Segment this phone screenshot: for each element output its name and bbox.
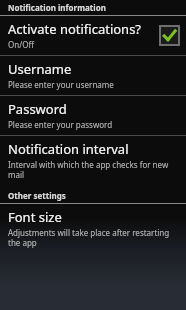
staticText: Please enter your password [8, 119, 113, 130]
button[interactable]: Activate notifications? [0, 16, 186, 55]
staticText: Activate notifications? [8, 20, 142, 38]
staticText: Notification interval [8, 140, 129, 158]
button[interactable]: Notification interval [0, 136, 186, 185]
staticText: Password [8, 100, 67, 118]
button[interactable]: Password [0, 96, 186, 135]
staticText: Notification information [8, 2, 106, 13]
staticText: Username [8, 60, 72, 78]
staticText: Interval with which the app checks for n… [8, 159, 180, 180]
staticText: Other settings [8, 190, 66, 201]
staticText: Font size [8, 208, 62, 226]
staticText: Please enter your username [8, 79, 114, 90]
button[interactable]: Username [0, 56, 186, 95]
staticText: Adjustments will take place after restar… [8, 227, 180, 248]
staticText: On/Off [8, 39, 34, 50]
button[interactable]: Activate notifications toggle [158, 24, 180, 46]
button[interactable]: Font size [0, 204, 186, 253]
